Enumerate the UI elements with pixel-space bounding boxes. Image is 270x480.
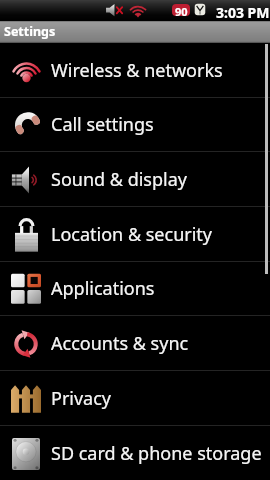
button[interactable]: Privacy (0, 371, 270, 426)
button[interactable]: Call settings (0, 97, 270, 152)
button[interactable]: Applications (0, 261, 270, 316)
button[interactable]: Sound & display (0, 152, 270, 207)
staticText: Privacy (51, 386, 112, 411)
button[interactable]: Location & security (0, 207, 270, 262)
staticText: Call settings (51, 112, 154, 137)
staticText: Applications (51, 276, 155, 301)
staticText: Accounts & sync (51, 331, 189, 356)
staticText: SD card & phone storage (51, 441, 262, 466)
staticText: Sound & display (51, 167, 187, 192)
staticText: Location & security (51, 222, 213, 247)
button[interactable]: SD card & phone storage (0, 426, 270, 480)
staticText: Wireless & networks (51, 58, 223, 83)
staticText: 3:03 PM (216, 3, 270, 22)
button[interactable]: Wireless & networks (0, 43, 270, 98)
staticText: 90 (175, 4, 188, 16)
button[interactable]: Accounts & sync (0, 316, 270, 371)
staticText: Settings (4, 23, 56, 40)
